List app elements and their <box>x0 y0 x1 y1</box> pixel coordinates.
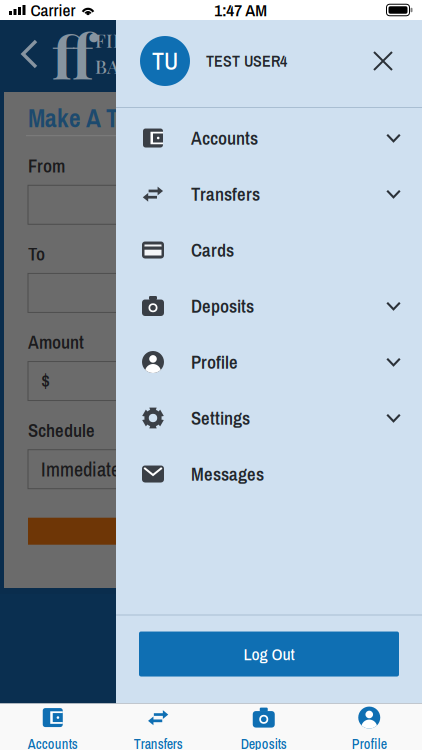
button[interactable]: Deposits <box>116 278 422 334</box>
staticText: Log Out <box>243 642 294 666</box>
staticText: Deposits <box>241 735 287 750</box>
staticText: Transfers <box>134 735 183 750</box>
button[interactable]: Cards <box>116 222 422 278</box>
staticText: 1:47 AM <box>214 0 267 22</box>
staticText: Amount <box>28 329 84 354</box>
button[interactable]: Messages <box>116 446 422 502</box>
staticText: Transfers <box>191 181 260 206</box>
button[interactable]: Profile <box>116 334 422 390</box>
button[interactable]: Accounts <box>116 110 422 166</box>
button[interactable]: Transfers <box>105 704 211 750</box>
staticText: Accounts <box>191 125 258 150</box>
staticText: Terms of Use <box>169 647 253 671</box>
staticText: To <box>28 241 45 266</box>
staticText: Accounts <box>28 735 78 750</box>
button[interactable]: Back <box>0 20 52 88</box>
staticText: Cards <box>191 237 234 262</box>
button[interactable]: Transfers <box>116 166 422 222</box>
staticText: Messages <box>191 461 264 486</box>
staticText: Security & Privacy <box>152 612 269 635</box>
staticText: BANK <box>95 53 145 78</box>
button[interactable]: Log Out <box>139 631 399 676</box>
staticText: Settings <box>191 405 250 430</box>
staticText: Profile <box>352 735 387 750</box>
staticText: TEST USER4 <box>206 50 287 72</box>
staticText: Carrier <box>30 0 75 22</box>
staticText: Deposits <box>191 293 254 318</box>
staticText: TU <box>152 45 178 77</box>
button[interactable]: Profile <box>316 704 422 750</box>
button[interactable]: Security & Privacy <box>152 594 269 635</box>
button[interactable]: Accounts <box>0 704 105 750</box>
staticText: Schedule <box>28 418 95 443</box>
staticText: From <box>28 153 65 178</box>
staticText: ff <box>52 13 94 95</box>
staticText: $ <box>41 368 50 394</box>
staticText: FIRST <box>95 28 147 52</box>
staticText: Profile <box>191 349 238 374</box>
button[interactable]: Settings <box>116 390 422 446</box>
button[interactable]: Deposits <box>211 704 316 750</box>
button[interactable]: Close menu <box>362 40 404 82</box>
staticText: Immediate (One Time) <box>41 456 208 483</box>
staticText: Make A Transfer <box>28 101 190 135</box>
button[interactable]: Terms of Use <box>169 635 253 671</box>
